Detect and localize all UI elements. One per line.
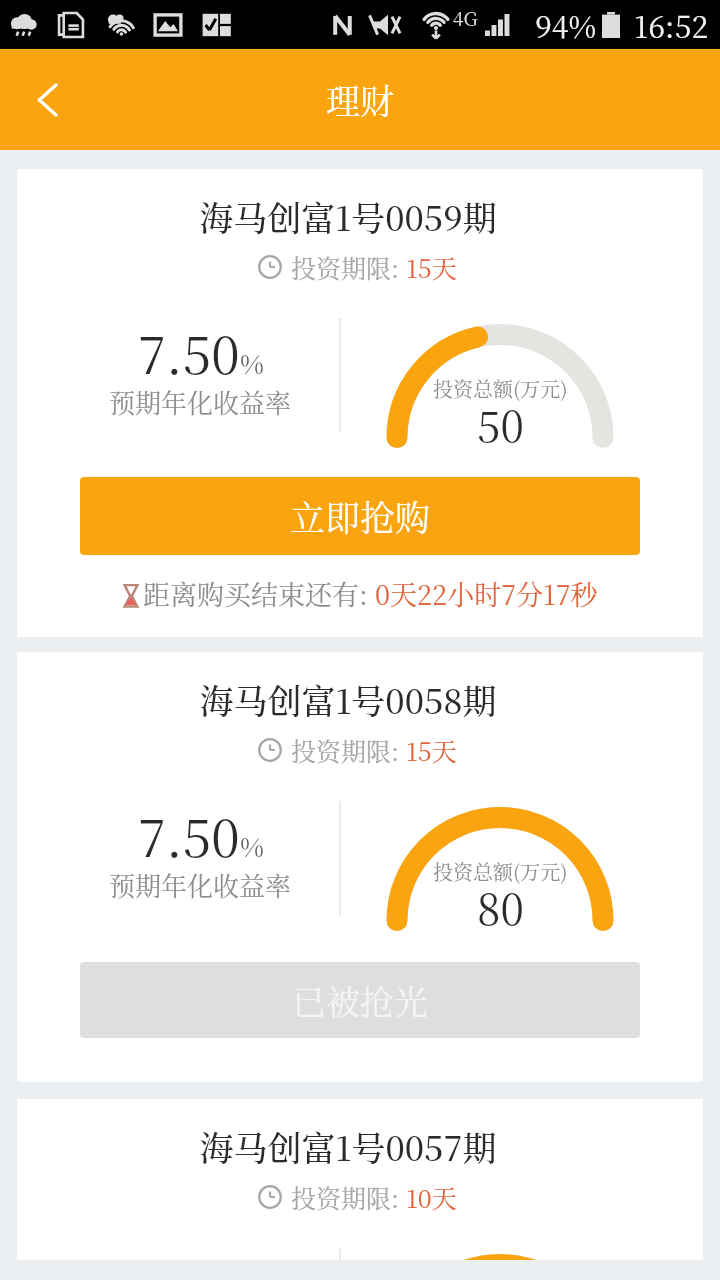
staticText: 4G [453,4,478,31]
button[interactable]: 海马创富1号0058期 [17,652,703,1082]
staticText: 立即抢购 [290,491,431,541]
staticText: 投资总额(万元) [433,857,568,886]
staticText: 投资期限: [291,1179,406,1215]
staticText: 16:52 [634,3,709,46]
staticText: 7.50 [138,315,240,388]
staticText: 预期年化收益率 [109,866,292,903]
staticText: 15天 [406,732,457,768]
staticText: 10天 [406,1179,457,1215]
staticText: 海马创富1号0058期 [17,675,691,724]
staticText: 投资期限: [291,732,406,768]
button[interactable]: Back [18,69,80,131]
staticText: 距离购买结束还有: [143,574,375,613]
button[interactable]: 已被抢光 [80,962,640,1038]
button[interactable]: 海马创富1号0057期 [17,1099,703,1260]
staticText: % [240,827,264,864]
staticText: % [240,344,264,381]
staticText: 15天 [406,249,457,285]
staticText: 0天22小时7分17秒 [375,574,598,613]
staticText: 94% [535,3,597,46]
staticText: 理财 [326,75,394,124]
staticText: 80 [477,877,524,937]
staticText: 海马创富1号0059期 [17,192,691,241]
staticText: 50 [477,394,524,454]
staticText: 已被抢光 [292,976,428,1025]
button[interactable]: 海马创富1号0059期 [17,169,703,637]
staticText: 预期年化收益率 [109,383,292,420]
button[interactable]: 立即抢购 [80,477,640,555]
staticText: 7.50 [138,798,240,871]
staticText: 海马创富1号0057期 [17,1122,691,1171]
staticText: 投资总额(万元) [433,374,568,403]
staticText: 投资期限: [291,249,406,285]
